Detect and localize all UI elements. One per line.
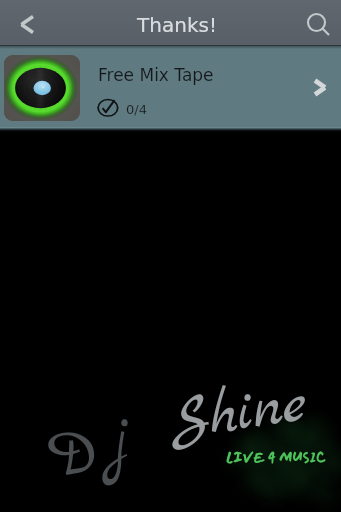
staticText: LIVE 4 MUSIC [226,447,326,468]
staticText: Thanks! [137,13,217,36]
staticText: Free Mix Tape [98,65,214,85]
staticText: 0/4 [126,102,147,117]
button[interactable]: Open Free Mix Tape [297,46,341,127]
button[interactable]: Back [0,0,54,45]
staticText: Dj [44,404,148,502]
button[interactable]: Search [293,0,341,45]
button[interactable] [0,46,341,128]
staticText: Shine [165,366,312,463]
